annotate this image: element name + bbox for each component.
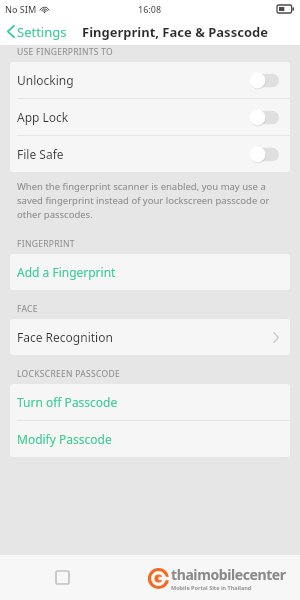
staticText: Fingerprint, Face & Passcode	[82, 23, 268, 41]
staticText: thaimobilecenter	[171, 565, 286, 584]
staticText: Add a Fingerprint	[17, 264, 116, 280]
staticText: When the fingerprint scanner is enabled,…	[17, 180, 276, 221]
button[interactable]: Turn off Passcode	[10, 384, 290, 420]
button[interactable]: Toggle	[249, 146, 279, 163]
button[interactable]: Toggle	[249, 109, 279, 126]
button[interactable]: Toggle	[249, 72, 279, 89]
button[interactable]: Settings	[0, 18, 72, 45]
button[interactable]: Unlocking	[10, 62, 290, 98]
staticText: Face Recognition	[17, 329, 273, 345]
staticText: Mobile Portal Site in Thailand	[171, 584, 252, 591]
button[interactable]: File Safe	[10, 136, 290, 172]
staticText: File Safe	[17, 146, 249, 162]
staticText: No SIM	[5, 3, 37, 15]
button[interactable]: Recents	[56, 571, 69, 584]
staticText: 16:08	[138, 3, 162, 15]
staticText: App Lock	[17, 109, 249, 125]
button[interactable]: Modify Passcode	[10, 421, 290, 457]
staticText: USE FINGERPRINTS TO	[17, 46, 114, 58]
button[interactable]: App Lock	[10, 99, 290, 135]
staticText: FINGERPRINT	[17, 238, 75, 250]
button[interactable]: Add a Fingerprint	[10, 254, 290, 290]
staticText: LOCKSCREEN PASSCODE	[17, 368, 120, 380]
staticText: Turn off Passcode	[17, 394, 118, 410]
button[interactable]: Face Recognition	[10, 319, 290, 355]
staticText: Modify Passcode	[17, 431, 112, 447]
staticText: FACE	[17, 303, 38, 315]
staticText: Unlocking	[17, 72, 249, 88]
staticText: Settings	[17, 23, 67, 40]
